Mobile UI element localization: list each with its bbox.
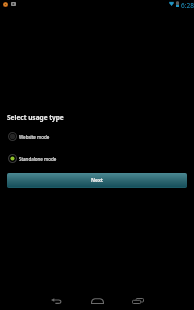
button[interactable]: Website mode	[0, 131, 194, 142]
staticText: Next	[91, 177, 104, 184]
staticText: Select usage type	[7, 113, 64, 122]
staticText: Standalone mode	[19, 156, 57, 162]
staticText: 6:28	[181, 1, 194, 10]
button[interactable]: Recent apps	[126, 291, 150, 310]
button[interactable]: Back	[44, 291, 68, 310]
button[interactable]: Home	[85, 291, 109, 310]
button[interactable]: Standalone mode	[0, 153, 194, 164]
button[interactable]: Next	[7, 173, 187, 188]
staticText: Website mode	[19, 134, 50, 140]
